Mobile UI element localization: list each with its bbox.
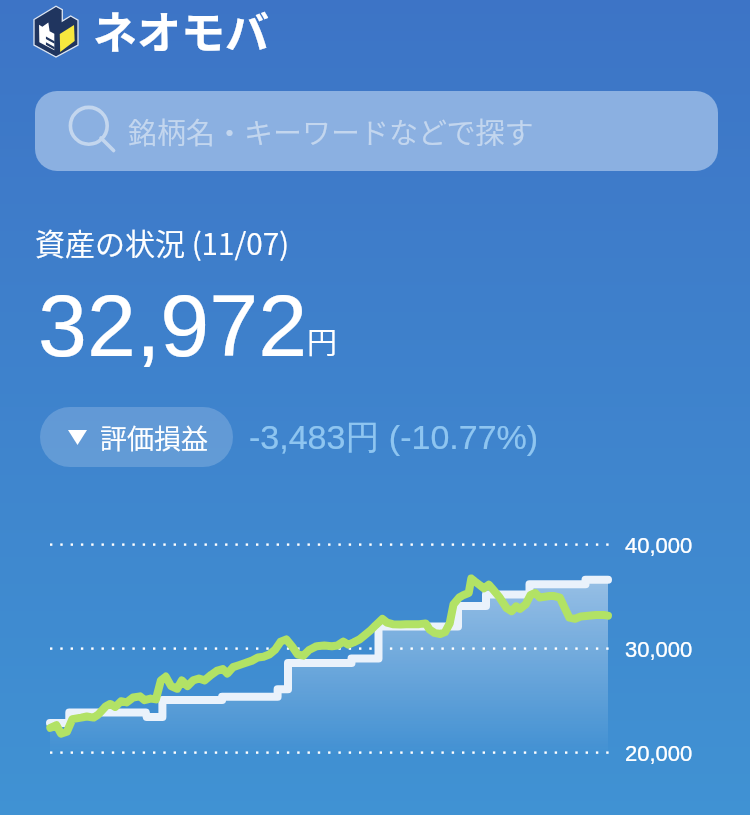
staticText: 40,000 [625,533,693,558]
staticText: 円 [307,318,337,361]
staticText: 銘柄名・キーワードなどで探す [128,110,534,152]
staticText: 評価損益 [100,418,208,457]
button[interactable]: 評価損益 [40,407,233,467]
staticText: ネオモバ [93,0,269,56]
staticText: 資産の状況 (11/07) [35,220,290,263]
button[interactable]: ネオモバ [0,0,290,54]
staticText: -3,483円 (-10.77%) [249,416,539,459]
staticText: 20,000 [625,741,693,766]
button[interactable]: Search [35,91,718,171]
staticText: 30,000 [625,637,693,662]
staticText: 32,972 [38,276,308,374]
